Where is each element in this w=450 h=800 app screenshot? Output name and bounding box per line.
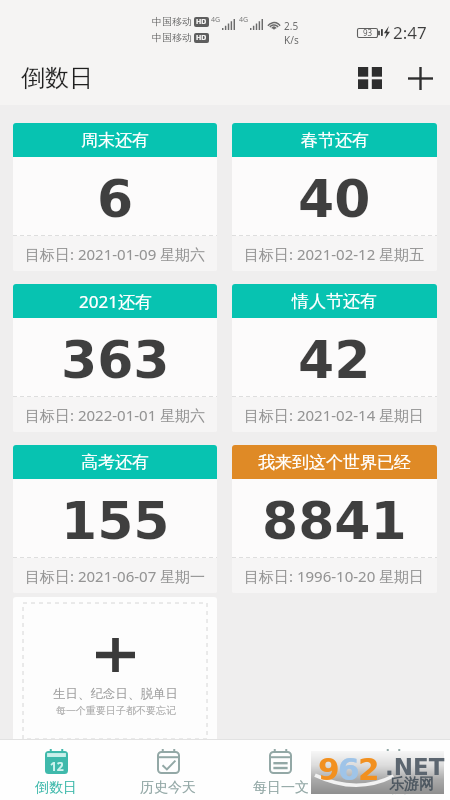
button[interactable]: Add new countdown bbox=[13, 597, 217, 739]
staticText: 42 bbox=[298, 330, 371, 391]
staticText: HD bbox=[196, 33, 207, 43]
staticText: 6 bbox=[97, 169, 134, 230]
button[interactable]: 高考还有 bbox=[13, 445, 217, 593]
staticText: 历史今天 bbox=[140, 779, 196, 797]
staticText: 中国移动 bbox=[152, 31, 192, 44]
staticText: 155 bbox=[61, 491, 170, 552]
staticText: 9 bbox=[318, 751, 340, 787]
staticText: 93 bbox=[363, 27, 373, 38]
staticText: 目标日: 2021-06-07 星期一 bbox=[25, 566, 206, 586]
staticText: K/s bbox=[284, 33, 299, 47]
button[interactable]: 情人节还有 bbox=[232, 284, 437, 432]
button[interactable]: 2021还有 bbox=[13, 284, 217, 432]
staticText: 情人节还有 bbox=[292, 291, 377, 312]
staticText: 40 bbox=[298, 169, 371, 230]
staticText: 春节还有 bbox=[301, 130, 369, 151]
staticText: 我来到这个世界已经 bbox=[258, 452, 411, 473]
staticText: 目标日: 2022-01-01 星期六 bbox=[25, 405, 206, 425]
staticText: 8841 bbox=[262, 491, 407, 552]
button[interactable]: 春节还有 bbox=[232, 123, 437, 271]
staticText: 高考还有 bbox=[81, 452, 149, 473]
button[interactable]: 每日一文 bbox=[224, 740, 337, 800]
staticText: 4G bbox=[239, 15, 249, 25]
staticText: 2.5 bbox=[284, 19, 299, 33]
button[interactable]: Add countdown bbox=[394, 52, 446, 104]
staticText: 周末还有 bbox=[81, 130, 149, 151]
staticText: 倒数日 bbox=[35, 779, 77, 797]
staticText: 363 bbox=[61, 330, 170, 391]
staticText: 倒数日 bbox=[21, 63, 93, 93]
staticText: 2 bbox=[358, 751, 380, 787]
staticText: 2021还有 bbox=[79, 290, 152, 313]
button[interactable]: 12 bbox=[0, 740, 112, 800]
staticText: 目标日: 2021-01-09 星期六 bbox=[25, 244, 206, 264]
staticText: 目标日: 1996-10-20 星期日 bbox=[244, 566, 425, 586]
staticText: 中国移动 bbox=[152, 15, 192, 28]
staticText: 6 bbox=[338, 751, 360, 787]
button[interactable]: 我的 bbox=[337, 740, 450, 800]
button[interactable]: 周末还有 bbox=[13, 123, 217, 271]
staticText: 每日一文 bbox=[253, 779, 309, 797]
staticText: 生日、纪念日、脱单日 bbox=[53, 686, 178, 702]
staticText: 2:47 bbox=[393, 21, 427, 44]
staticText: 我的 bbox=[380, 779, 408, 797]
button[interactable]: 历史今天 bbox=[112, 740, 224, 800]
staticText: 每一个重要日子都不要忘记 bbox=[56, 704, 176, 717]
staticText: 目标日: 2021-02-14 星期日 bbox=[244, 405, 425, 425]
button[interactable]: Switch to grid view bbox=[346, 54, 394, 102]
staticText: 4G bbox=[211, 15, 221, 25]
staticText: HD bbox=[196, 17, 207, 27]
staticText: .NET bbox=[385, 754, 445, 781]
staticText: 目标日: 2021-02-12 星期五 bbox=[244, 244, 425, 264]
staticText: 12 bbox=[50, 758, 64, 774]
staticText: 乐游网 bbox=[389, 775, 434, 794]
button[interactable]: 我来到这个世界已经 bbox=[232, 445, 437, 593]
